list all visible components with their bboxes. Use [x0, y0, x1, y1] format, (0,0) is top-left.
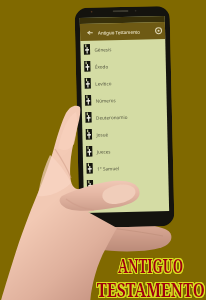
button[interactable]: Números	[81, 90, 167, 109]
button[interactable]: Jueces	[83, 141, 168, 160]
button[interactable]: Josué	[82, 124, 168, 143]
button[interactable]: 1° Reyes	[84, 192, 169, 211]
button[interactable]: Levítico	[81, 73, 166, 92]
staticText: TESTAMENTO	[97, 276, 206, 298]
staticText: TESTAMENTO	[96, 278, 204, 300]
staticText: TESTAMENTO	[97, 278, 206, 300]
staticText: ANTIGUO	[117, 254, 183, 276]
staticText: ANTIGUO	[118, 254, 184, 276]
button[interactable]: Génesis	[80, 39, 166, 58]
button[interactable]: Back	[85, 28, 95, 38]
staticText: TESTAMENTO	[96, 276, 204, 298]
staticText: Génesis	[94, 46, 111, 53]
staticText: 2° Samuel	[97, 182, 120, 189]
staticText: 1° Samuel	[97, 165, 119, 172]
staticText: ANTIGUO	[119, 254, 185, 276]
staticText: Antiguo Testamento	[98, 29, 140, 36]
staticText: Josué	[96, 131, 108, 138]
staticText: ANTIGUO	[117, 252, 183, 274]
staticText: TESTAMENTO	[97, 277, 206, 299]
button[interactable]: 2° Samuel	[83, 175, 169, 194]
staticText: Números	[96, 97, 117, 104]
staticText: Éxodo	[95, 63, 109, 70]
staticText: Deuteronomio	[96, 114, 128, 121]
staticText: TESTAMENTO	[96, 277, 204, 299]
staticText: ANTIGUO	[119, 252, 185, 274]
staticText: ANTIGUO	[119, 253, 185, 275]
button[interactable]: 1° Samuel	[83, 158, 168, 177]
button[interactable]: Settings	[153, 25, 164, 36]
staticText: ANTIGUO	[118, 253, 184, 275]
staticText: Levítico	[95, 80, 112, 87]
staticText: TESTAMENTO	[97, 277, 205, 299]
staticText: ANTIGUO	[118, 252, 184, 274]
staticText: 1° Reyes	[98, 199, 117, 206]
button[interactable]: Éxodo	[81, 56, 166, 75]
staticText: ANTIGUO	[117, 253, 183, 275]
button[interactable]: Deuteronomio	[82, 107, 167, 126]
staticText: TESTAMENTO	[97, 278, 205, 300]
staticText: TESTAMENTO	[97, 276, 205, 298]
staticText: Jueces	[97, 148, 111, 155]
